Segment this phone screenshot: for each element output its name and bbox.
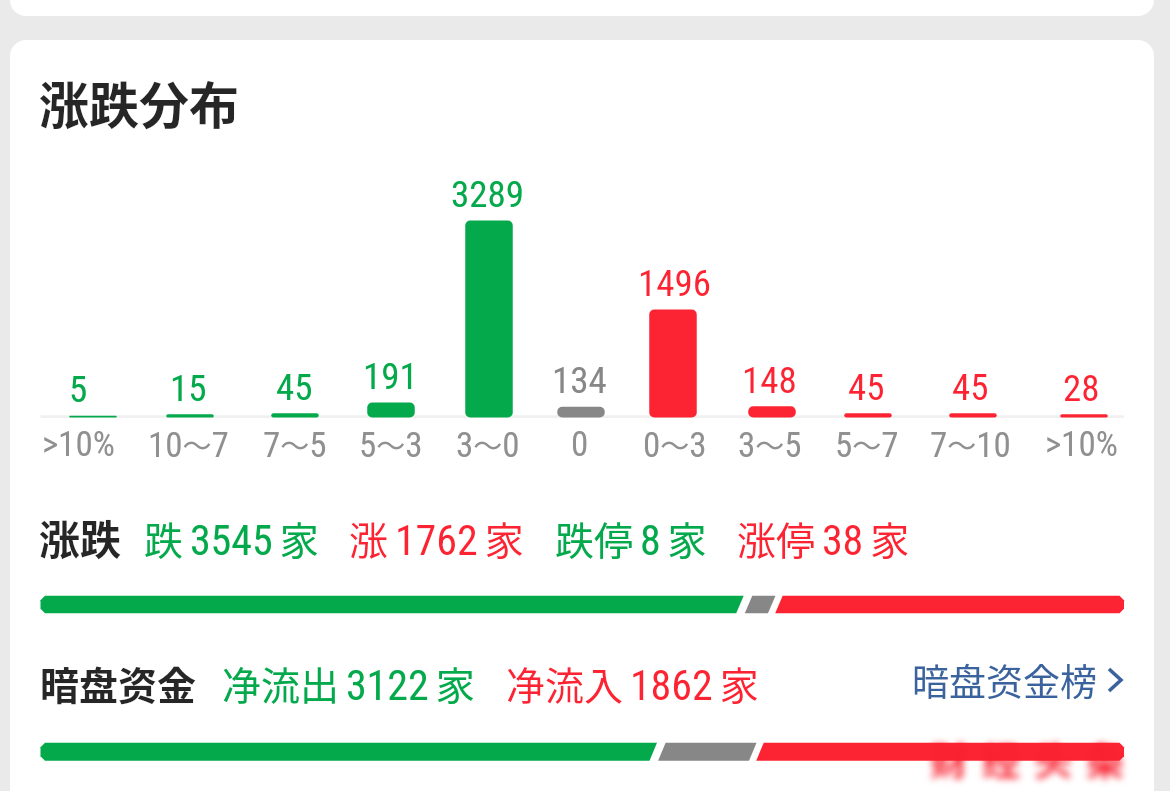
staticText: 191: [363, 355, 418, 398]
staticText: 涨 1762 家: [349, 510, 524, 566]
staticText: 3289: [451, 173, 525, 216]
staticText: 5〜3: [359, 423, 423, 465]
button[interactable]: 暗盘资金榜: [912, 653, 1131, 707]
staticText: 5〜7: [835, 423, 899, 465]
staticText: 7〜10: [930, 423, 1011, 465]
staticText: 7〜5: [263, 423, 327, 465]
staticText: 涨跌分布: [39, 66, 239, 138]
staticText: 跌 3545 家: [144, 510, 319, 566]
staticText: 15: [170, 367, 207, 410]
staticText: >10%: [1045, 424, 1118, 465]
staticText: 财经头条: [930, 731, 1139, 786]
staticText: 134: [552, 359, 607, 402]
staticText: 暗盘资金: [40, 655, 197, 711]
staticText: 净流出 3122 家: [222, 655, 475, 711]
staticText: 10〜7: [148, 423, 229, 465]
staticText: 0: [571, 424, 589, 465]
staticText: >10%: [42, 424, 115, 465]
staticText: 45: [848, 366, 885, 409]
staticText: 45: [276, 366, 313, 409]
staticText: 5: [69, 368, 88, 411]
staticText: 148: [742, 359, 797, 402]
staticText: 涨停 38 家: [737, 510, 910, 566]
staticText: 净流入 1862 家: [506, 655, 759, 711]
staticText: 3〜5: [738, 423, 802, 465]
staticText: 3〜0: [456, 423, 520, 465]
staticText: 跌停 8 家: [555, 510, 707, 566]
staticText: 涨跌: [39, 507, 121, 566]
staticText: 0〜3: [643, 423, 707, 465]
staticText: 1496: [638, 262, 712, 305]
staticText: 暗盘资金榜: [912, 653, 1097, 707]
other: 更多: [1097, 658, 1131, 702]
staticText: 45: [952, 366, 989, 409]
staticText: 28: [1063, 367, 1100, 410]
